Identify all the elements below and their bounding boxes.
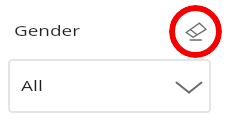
staticText: Gender bbox=[14, 20, 80, 40]
button[interactable]: Gender bbox=[14, 20, 65, 40]
staticText: All bbox=[21, 75, 43, 95]
button[interactable]: All bbox=[8, 59, 211, 113]
button[interactable]: Clear filter bbox=[169, 5, 222, 58]
